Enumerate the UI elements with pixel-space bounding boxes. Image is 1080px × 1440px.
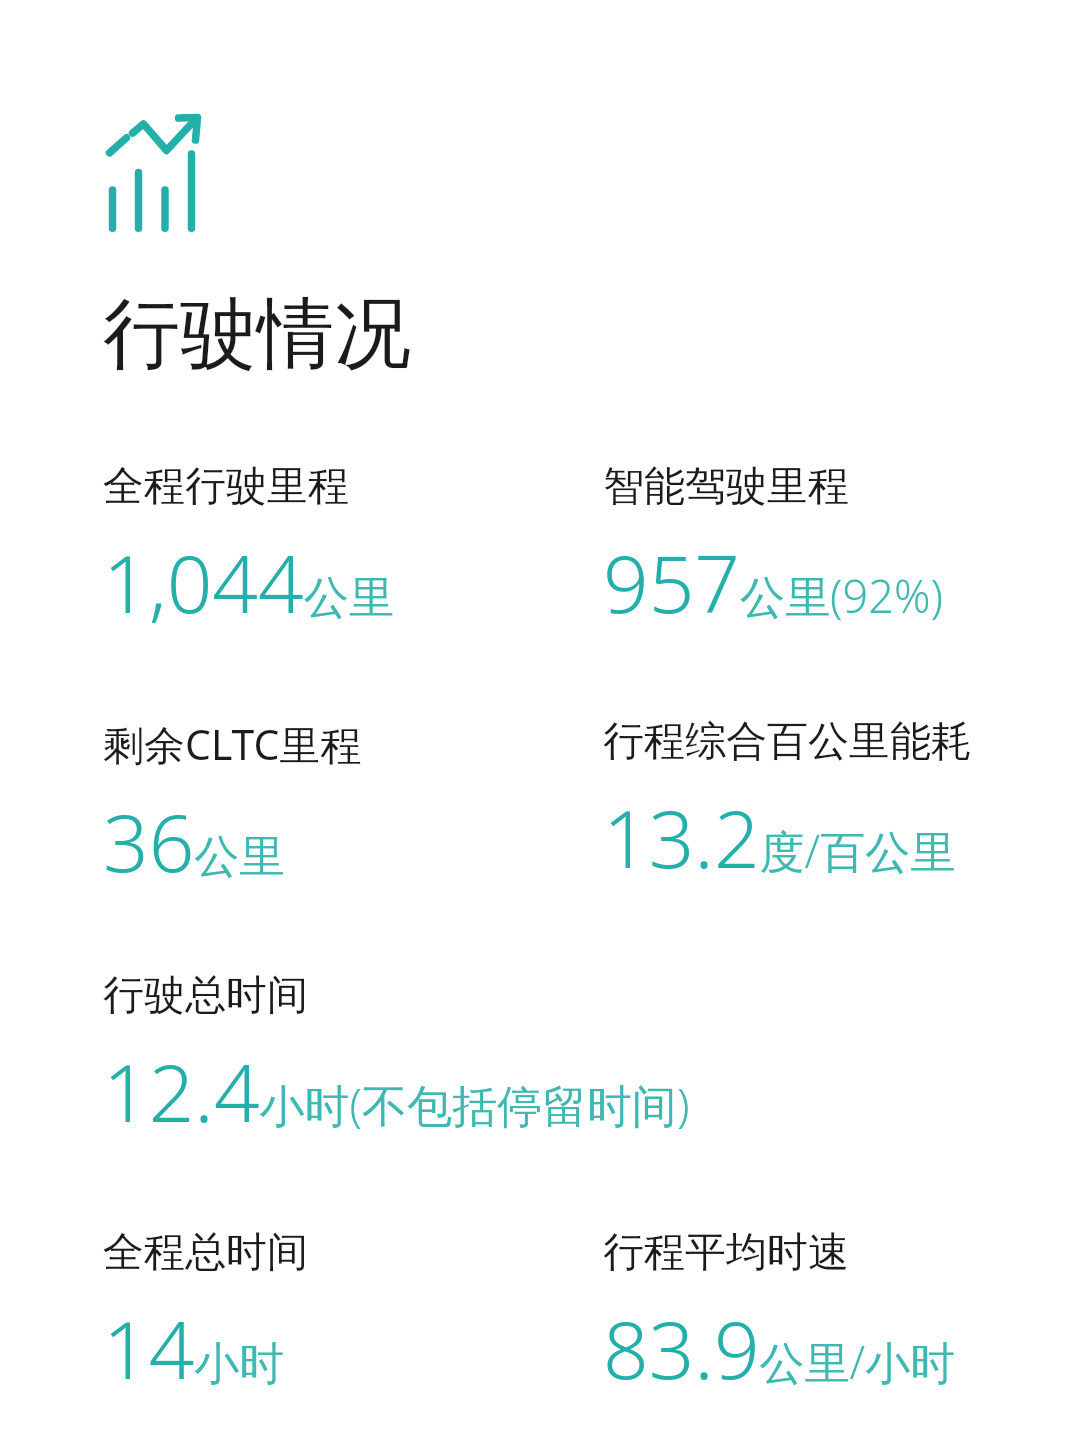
button[interactable]: 剩余CLTC里程: [103, 716, 603, 895]
button[interactable]: 智能驾驶里程: [603, 461, 1040, 636]
staticText: 全程总时间: [103, 1227, 308, 1279]
staticText: 1,044公里: [103, 527, 394, 636]
staticText: 957公里(92%): [603, 527, 943, 636]
other: 行驶情况图标: [105, 114, 205, 230]
staticText: 83.9公里/小时: [603, 1293, 956, 1402]
button[interactable]: 行程综合百公里能耗: [603, 716, 1040, 891]
staticText: 智能驾驶里程: [603, 461, 849, 513]
staticText: 36公里: [103, 786, 285, 895]
staticText: 13.2度/百公里: [603, 782, 956, 891]
staticText: 12.4小时(不包括停留时间): [103, 1036, 690, 1145]
button[interactable]: 全程总时间: [103, 1227, 603, 1402]
staticText: 全程行驶里程: [103, 461, 349, 513]
staticText: 行程综合百公里能耗: [603, 716, 972, 768]
staticText: 行程平均时速: [603, 1227, 849, 1279]
button[interactable]: 行程平均时速: [603, 1227, 1040, 1402]
staticText: 行驶总时间: [103, 970, 308, 1022]
button[interactable]: 行驶总时间: [103, 970, 1040, 1145]
staticText: 剩余CLTC里程: [103, 716, 362, 772]
button[interactable]: 全程行驶里程: [103, 461, 603, 636]
button[interactable]: 行驶情况: [103, 286, 411, 383]
staticText: 14小时: [103, 1293, 285, 1402]
